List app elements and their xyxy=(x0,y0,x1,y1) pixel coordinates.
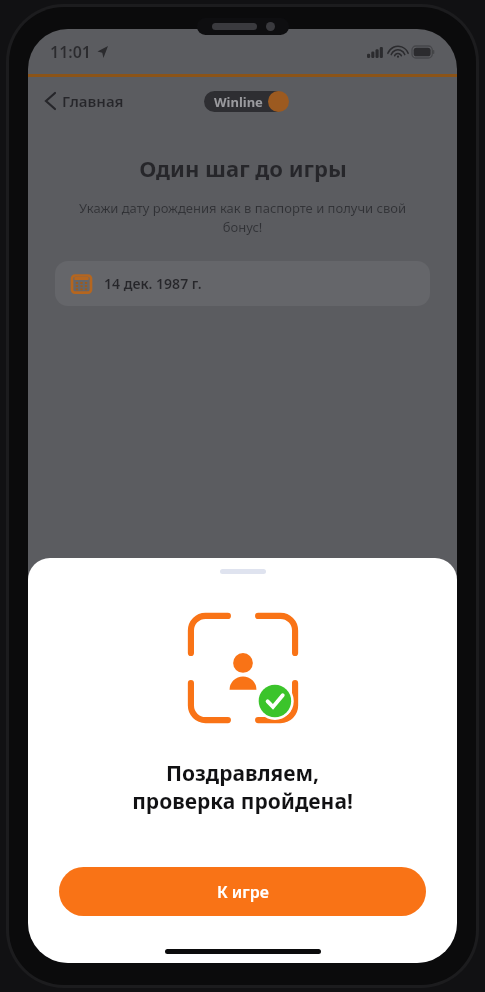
staticText: Поздравляем, проверка пройдена! xyxy=(132,759,353,815)
button[interactable]: Winline xyxy=(204,90,289,112)
staticText: Главная xyxy=(62,91,124,111)
button[interactable]: К игре xyxy=(59,867,426,916)
button[interactable]: 14 дек. 1987 г. xyxy=(55,261,430,306)
staticText: Winline xyxy=(214,93,263,111)
staticText: 11:01 xyxy=(50,41,92,63)
staticText: Укажи дату рождения как в паспорте и пол… xyxy=(58,199,427,236)
staticText: К игре xyxy=(217,881,269,903)
staticText: 14 дек. 1987 г. xyxy=(104,274,202,293)
button[interactable]: Главная xyxy=(42,87,128,115)
staticText: Один шаг до игры xyxy=(139,153,347,183)
